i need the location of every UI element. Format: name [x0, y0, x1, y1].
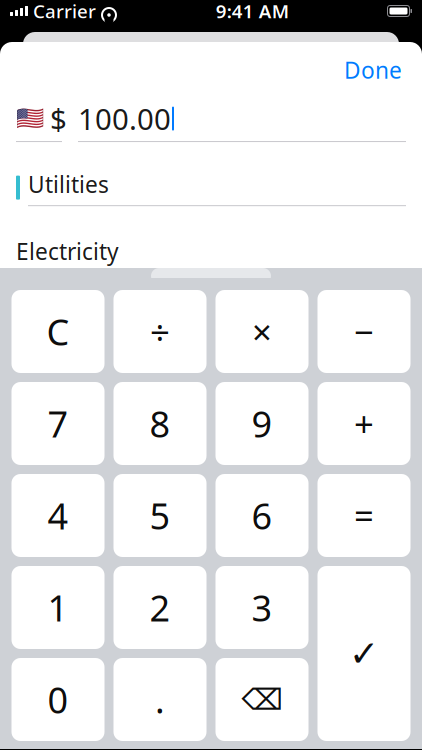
button[interactable]: 5 [113, 474, 206, 557]
staticText: 4 [47, 492, 68, 539]
staticText: 0 [47, 676, 68, 723]
staticText: = [354, 492, 374, 538]
button[interactable]: 2 [113, 566, 206, 649]
button[interactable]: = [317, 474, 410, 557]
button[interactable]: 🇺🇸 [16, 99, 62, 142]
staticText: 100.00 [78, 99, 171, 138]
staticText: 8 [149, 400, 170, 447]
staticText: 5 [149, 492, 170, 539]
staticText: Carrier [33, 0, 96, 23]
button[interactable]: 6 [215, 474, 308, 557]
button[interactable]: 7 [11, 382, 104, 465]
staticText: Utilities [28, 169, 109, 199]
staticText: 9:41 AM [216, 0, 289, 23]
staticText: ✓ [349, 633, 379, 674]
staticText: × [252, 308, 272, 354]
staticText: $ [50, 99, 67, 138]
button[interactable]: C [11, 290, 104, 373]
staticText: 7 [47, 400, 68, 447]
staticText: + [354, 400, 374, 446]
button[interactable]: 8 [113, 382, 206, 465]
button[interactable]: Done [336, 51, 410, 89]
staticText: C [46, 308, 69, 355]
button[interactable]: ⌫ [215, 658, 308, 741]
button[interactable]: 9 [215, 382, 308, 465]
staticText: . [155, 676, 165, 723]
staticText: 🇺🇸 [16, 106, 44, 131]
button[interactable]: 3 [215, 566, 308, 649]
staticText: 3 [251, 584, 272, 631]
staticText: ⌫ [241, 683, 282, 716]
button[interactable]: 0 [11, 658, 104, 741]
button[interactable]: × [215, 290, 308, 373]
staticText: 9 [251, 400, 272, 447]
staticText: Done [344, 55, 402, 85]
button[interactable]: Confirm [317, 566, 410, 741]
staticText: 2 [149, 584, 170, 631]
button[interactable]: 4 [11, 474, 104, 557]
button[interactable]: . [113, 658, 206, 741]
button[interactable]: − [317, 290, 410, 373]
staticText: 1 [47, 584, 68, 631]
button[interactable]: ÷ [113, 290, 206, 373]
button[interactable]: + [317, 382, 410, 465]
staticText: 6 [251, 492, 272, 539]
staticText: Electricity [16, 236, 119, 266]
staticText: − [354, 308, 374, 354]
button[interactable]: 1 [11, 566, 104, 649]
staticText: ÷ [150, 308, 170, 354]
